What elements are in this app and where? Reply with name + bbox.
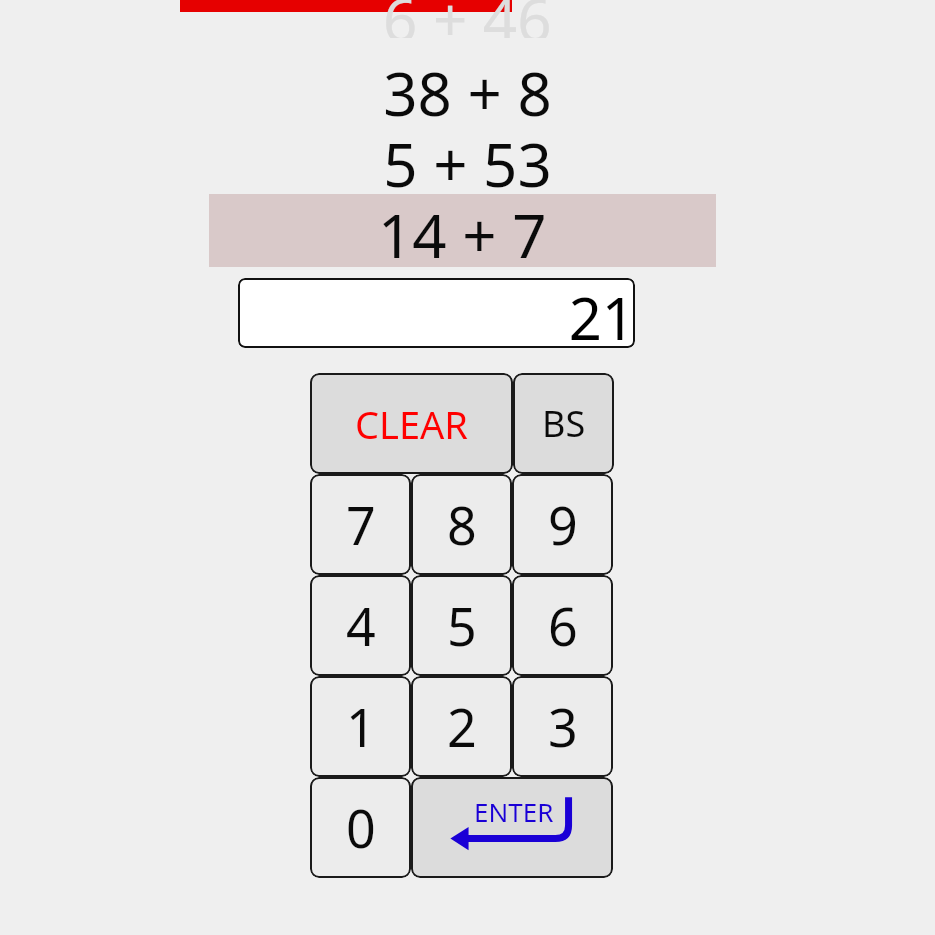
staticText: 6 [548,590,578,661]
staticText: 14 + 7 [378,194,547,267]
button[interactable]: 38 + 8 [0,52,935,125]
staticText: 6 + 46 [383,0,552,38]
button[interactable]: 6 [512,575,613,676]
staticText: 4 [346,590,376,661]
button[interactable]: 14 + 7 [209,194,716,267]
button[interactable]: 9 [512,474,613,575]
staticText: 8 [447,489,477,560]
button[interactable]: 1 [310,676,411,777]
staticText: BS [542,399,586,448]
button[interactable]: Enter [411,777,613,878]
button[interactable]: 7 [310,474,411,575]
staticText: 38 + 8 [383,52,552,125]
staticText: 21 [568,278,635,348]
staticText: 1 [346,691,376,762]
button[interactable]: 5 [411,575,512,676]
button[interactable]: CLEAR [310,373,513,474]
staticText: 7 [346,489,376,560]
staticText: 2 [447,691,477,762]
button[interactable]: 5 + 53 [0,123,935,196]
button[interactable]: 8 [411,474,512,575]
button[interactable]: 0 [310,777,411,878]
button[interactable]: BS [513,373,614,474]
staticText: 9 [548,489,578,560]
button[interactable]: 2 [411,676,512,777]
staticText: 3 [548,691,578,762]
button[interactable]: 4 [310,575,411,676]
button[interactable]: 21 [238,278,635,348]
staticText: 5 + 53 [383,123,552,196]
staticText: CLEAR [355,398,468,450]
button[interactable]: 3 [512,676,613,777]
staticText: ENTER [474,794,554,829]
staticText: 0 [346,792,376,863]
staticText: 5 [447,590,477,661]
